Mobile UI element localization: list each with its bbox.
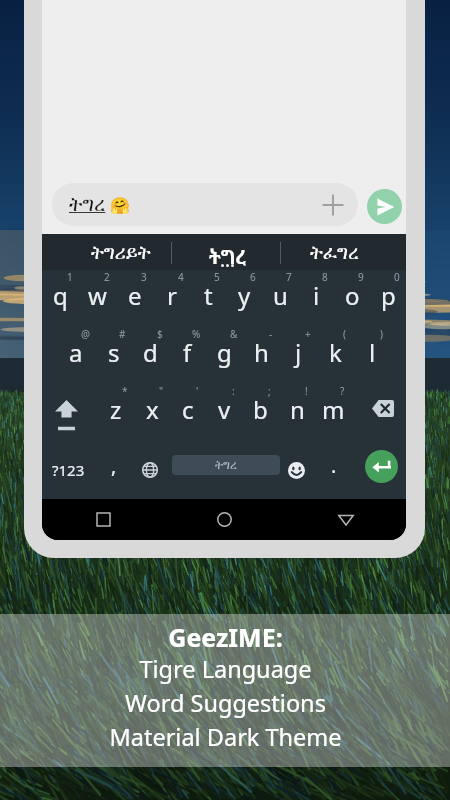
- button[interactable]: (: [317, 327, 354, 384]
- button[interactable]: 4: [153, 270, 190, 327]
- button[interactable]: #: [95, 327, 132, 384]
- staticText: p: [381, 279, 396, 312]
- staticText: c: [182, 393, 194, 426]
- staticText: r: [167, 279, 177, 312]
- button[interactable]: ትፈግረ: [281, 234, 388, 270]
- staticText: %: [192, 327, 201, 341]
- staticText: !: [305, 384, 308, 398]
- staticText: $: [157, 327, 163, 341]
- staticText: ": [159, 384, 164, 398]
- button[interactable]: $: [132, 327, 169, 384]
- staticText: ?123: [52, 460, 85, 480]
- button[interactable]: ?: [315, 384, 351, 441]
- button[interactable]: 0: [370, 270, 406, 327]
- button[interactable]: 9: [334, 270, 370, 327]
- button[interactable]: ": [134, 384, 170, 441]
- staticText: w: [88, 279, 107, 312]
- staticText: ): [380, 327, 383, 341]
- button[interactable]: ትግረ: [174, 234, 281, 270]
- button[interactable]: &: [206, 327, 243, 384]
- staticText: 6: [250, 270, 256, 284]
- staticText: a: [69, 336, 83, 369]
- staticText: ትፈግረ: [310, 244, 359, 263]
- button[interactable]: Back: [285, 499, 406, 540]
- button[interactable]: +: [280, 327, 317, 384]
- button[interactable]: 8: [298, 270, 334, 327]
- button[interactable]: Home: [164, 499, 285, 540]
- button[interactable]: !: [279, 384, 315, 441]
- staticText: .: [331, 452, 337, 479]
- button[interactable]: Emoji: [278, 447, 314, 493]
- button[interactable]: ?123: [46, 447, 90, 493]
- staticText: q: [53, 279, 68, 312]
- staticText: t: [204, 279, 213, 312]
- button[interactable]: @: [57, 327, 95, 384]
- staticText: ?: [340, 384, 345, 398]
- staticText: v: [218, 393, 231, 426]
- staticText: #: [119, 327, 126, 341]
- button[interactable]: ትግረ: [52, 183, 358, 226]
- staticText: d: [143, 336, 158, 369]
- staticText: Tigre Language: [139, 653, 312, 685]
- button[interactable]: .: [316, 447, 352, 493]
- staticText: j: [295, 336, 302, 369]
- button[interactable]: Switch language: [132, 447, 168, 493]
- button[interactable]: Shift: [44, 386, 91, 439]
- staticText: ትግሪይት: [91, 244, 151, 263]
- button[interactable]: 3: [116, 270, 153, 327]
- button[interactable]: Recents: [42, 499, 164, 540]
- staticText: ,: [111, 452, 117, 479]
- staticText: k: [329, 336, 342, 369]
- button[interactable]: ': [170, 384, 206, 441]
- staticText: &: [230, 327, 238, 341]
- staticText: n: [290, 393, 305, 426]
- staticText: (: [343, 327, 346, 341]
- button[interactable]: 7: [262, 270, 298, 327]
- staticText: 1: [67, 270, 73, 284]
- button[interactable]: ,: [96, 447, 132, 493]
- button[interactable]: -: [243, 327, 280, 384]
- staticText: 0: [394, 270, 400, 284]
- button[interactable]: Backspace: [358, 386, 406, 439]
- staticText: ትግረ: [69, 195, 106, 215]
- staticText: +: [305, 327, 311, 341]
- button[interactable]: 6: [226, 270, 262, 327]
- staticText: u: [273, 279, 288, 312]
- staticText: l: [369, 336, 376, 369]
- staticText: e: [128, 279, 142, 312]
- button[interactable]: ;: [242, 384, 278, 441]
- staticText: g: [217, 336, 232, 369]
- staticText: 4: [178, 270, 184, 284]
- button[interactable]: *: [98, 384, 134, 441]
- staticText: ትግረ: [209, 244, 246, 270]
- button[interactable]: Send: [367, 189, 402, 224]
- button[interactable]: ): [354, 327, 391, 384]
- button[interactable]: :: [206, 384, 242, 441]
- staticText: h: [254, 336, 269, 369]
- button[interactable]: ትግሪይት: [67, 234, 174, 270]
- staticText: 9: [358, 270, 364, 284]
- staticText: x: [146, 393, 159, 426]
- button[interactable]: 2: [79, 270, 116, 327]
- button[interactable]: Add attachment: [316, 188, 350, 222]
- staticText: 8: [322, 270, 328, 284]
- staticText: s: [108, 336, 120, 369]
- button[interactable]: 1: [42, 270, 79, 327]
- staticText: z: [110, 393, 122, 426]
- button[interactable]: Enter: [365, 450, 398, 483]
- staticText: f: [183, 336, 192, 369]
- button[interactable]: %: [169, 327, 206, 384]
- staticText: GeezIME:: [168, 620, 283, 654]
- staticText: @: [81, 327, 90, 341]
- button[interactable]: 5: [190, 270, 226, 327]
- staticText: o: [345, 279, 360, 312]
- staticText: 2: [104, 270, 110, 284]
- staticText: b: [253, 393, 268, 426]
- staticText: 5: [214, 270, 220, 284]
- staticText: i: [313, 279, 320, 312]
- staticText: Material Dark Theme: [109, 721, 342, 753]
- button[interactable]: ትግረ: [172, 455, 280, 475]
- staticText: m: [322, 393, 345, 426]
- staticText: ;: [268, 384, 271, 398]
- staticText: :: [232, 384, 235, 398]
